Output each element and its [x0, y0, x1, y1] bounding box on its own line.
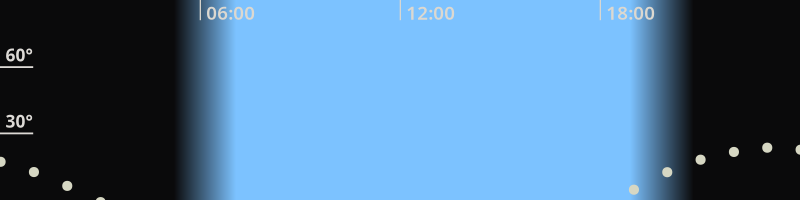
staticText: 18:00 [606, 0, 655, 25]
staticText: 06:00 [206, 0, 255, 25]
staticText: 12:00 [406, 0, 455, 25]
staticText: 30° [5, 109, 32, 132]
staticText: 60° [5, 43, 32, 66]
